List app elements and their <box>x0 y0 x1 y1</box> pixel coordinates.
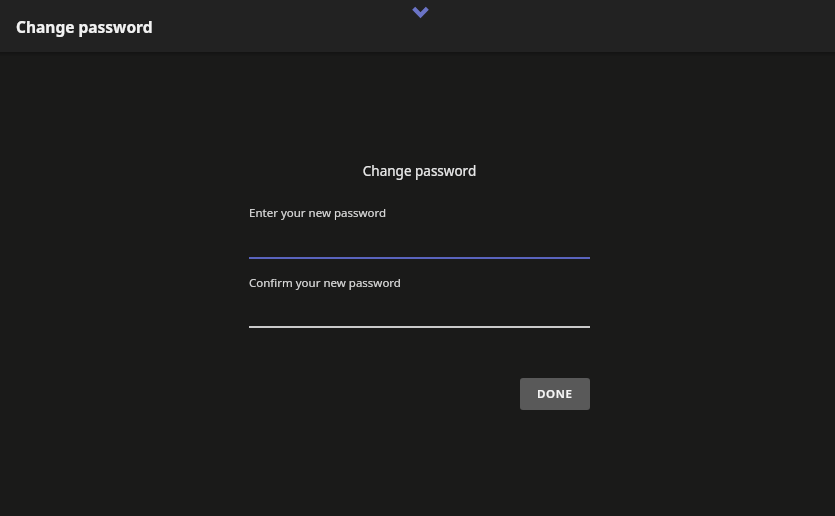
staticText: Change password <box>249 162 590 180</box>
staticText: Confirm your new password <box>249 275 401 291</box>
button[interactable]: Enter your new password <box>249 205 590 223</box>
button[interactable]: Confirm your new password <box>249 275 590 293</box>
staticText: Change password <box>16 16 153 37</box>
staticText: Enter your new password <box>249 205 387 221</box>
staticText: DONE <box>537 386 573 402</box>
button[interactable]: DONE <box>520 378 590 410</box>
button[interactable] <box>405 0 435 28</box>
